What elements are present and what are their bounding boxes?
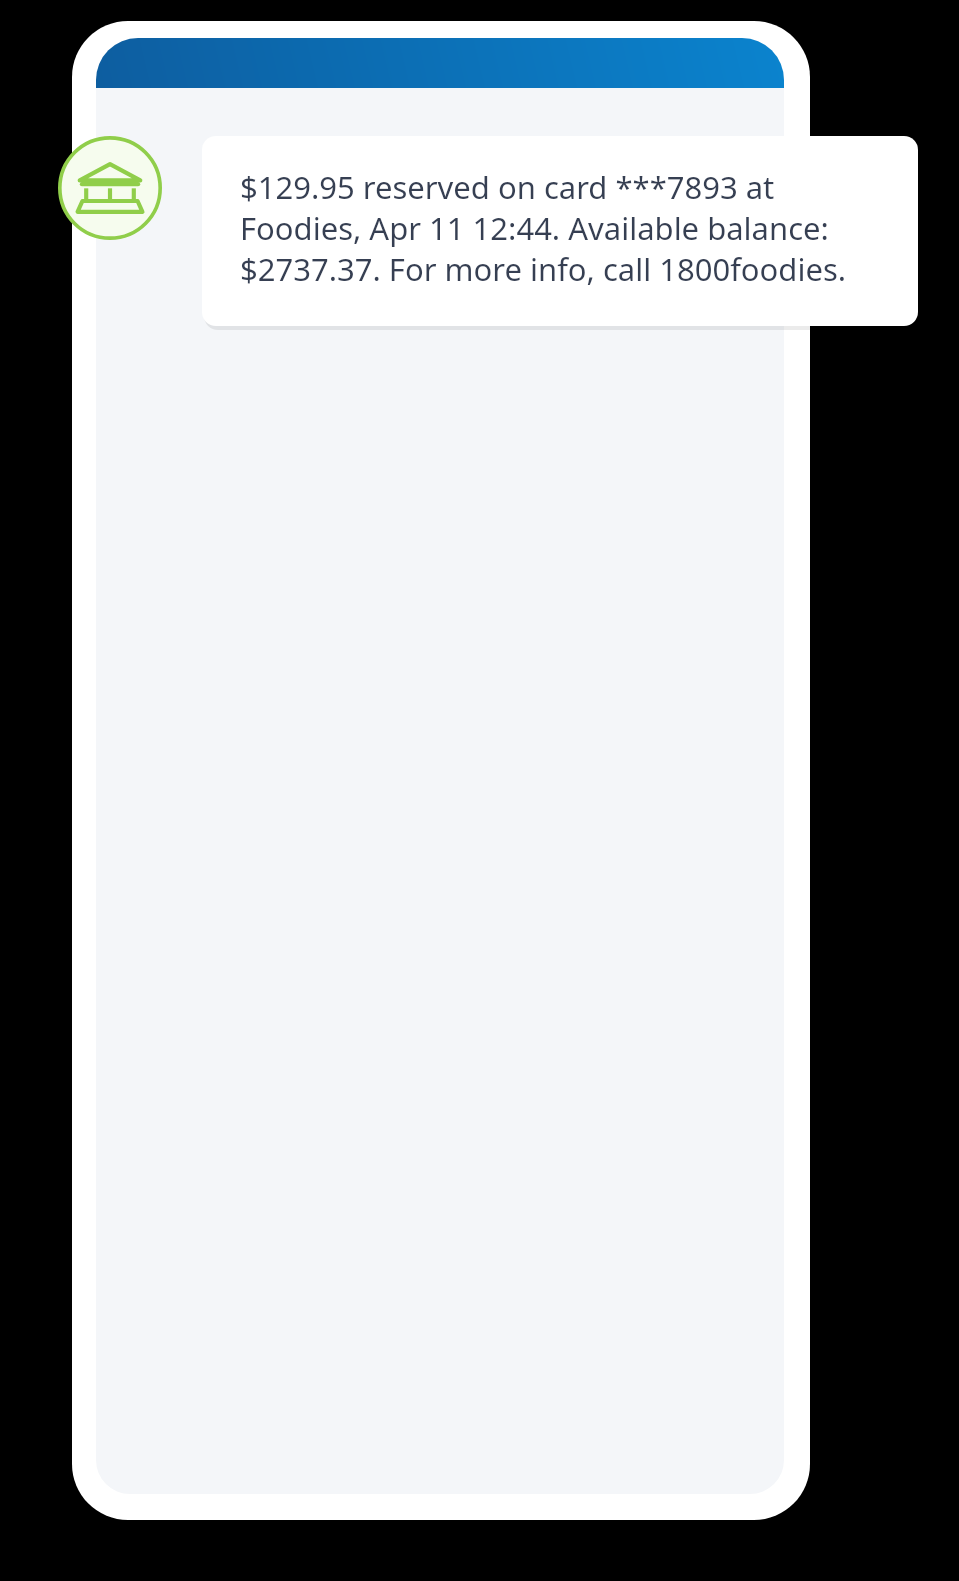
staticText: $129.95 reserved on card ***7893 at Food…	[240, 166, 894, 290]
button[interactable]: $129.95 reserved on card ***7893 at Food…	[202, 136, 918, 326]
button[interactable]: Bank	[58, 136, 162, 240]
button[interactable]	[96, 38, 784, 88]
